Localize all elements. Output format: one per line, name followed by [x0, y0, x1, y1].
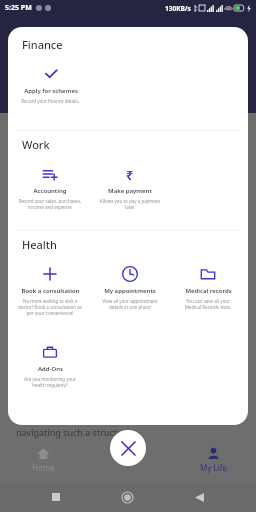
staticText: Medical records — [185, 287, 232, 295]
button[interactable]: Apply for schemes — [14, 56, 86, 122]
staticText: Record your finance details. — [21, 98, 80, 104]
staticText: Make payment — [108, 187, 152, 195]
button[interactable]: Add-Ons — [14, 334, 86, 400]
staticText: My appointments — [104, 287, 156, 295]
staticText: ₹ — [126, 166, 134, 182]
button[interactable]: Medical records — [174, 256, 242, 328]
staticText: Apply for schemes — [24, 87, 78, 95]
staticText: Health — [22, 237, 57, 252]
button[interactable]: Accounting — [14, 156, 86, 222]
staticText: Home — [32, 462, 55, 473]
staticText: navigating such a structure. — [16, 426, 134, 438]
staticText: Book a consultation — [21, 287, 80, 295]
button[interactable]: Close — [110, 430, 146, 466]
button[interactable]: My Life — [171, 438, 256, 482]
staticText: Allows you to pay a payment later — [98, 198, 162, 210]
staticText: 130KB/s — [165, 4, 191, 13]
button[interactable]: ₹ — [94, 156, 166, 222]
staticText: 5:25 PM — [5, 3, 32, 13]
staticText: You can save all your Medical Records he… — [178, 298, 238, 310]
button[interactable]: Book a consultation — [14, 256, 86, 328]
button[interactable]: Home — [0, 438, 86, 482]
staticText: Work — [22, 137, 50, 152]
staticText: Accounting — [33, 187, 67, 195]
staticText: Record your sales, purchases, income and… — [18, 198, 82, 210]
staticText: View all your appointment details in one… — [98, 298, 162, 310]
staticText: Finance — [22, 37, 63, 52]
staticText: My Life — [200, 462, 227, 473]
staticText: Are you monitoring your health regularly… — [18, 376, 82, 388]
staticText: No more waiting to visit a doctor! Book … — [18, 298, 82, 316]
button[interactable]: My appointments — [94, 256, 166, 328]
staticText: Add-Ons — [38, 365, 63, 373]
